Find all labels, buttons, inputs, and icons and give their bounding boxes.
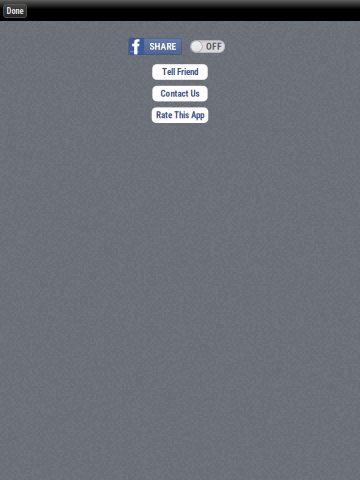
staticText: OFF	[206, 41, 222, 52]
staticText: Done	[7, 6, 24, 16]
button[interactable]: Tell Friend	[152, 64, 208, 80]
button[interactable]: OFF	[190, 40, 225, 53]
staticText: Tell Friend	[162, 67, 198, 77]
button[interactable]: Contact Us	[152, 86, 208, 101]
button[interactable]: SHARE	[129, 38, 182, 55]
staticText: SHARE	[149, 41, 176, 52]
button[interactable]: Done	[4, 4, 27, 18]
staticText: Contact Us	[160, 88, 199, 99]
staticText: Rate This App	[156, 110, 204, 120]
button[interactable]: Rate This App	[152, 107, 208, 123]
